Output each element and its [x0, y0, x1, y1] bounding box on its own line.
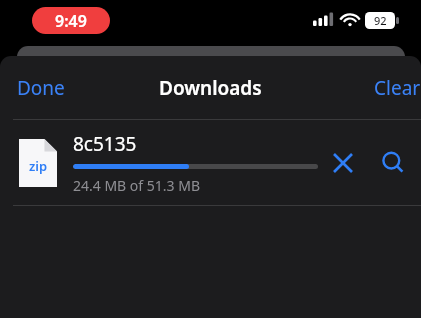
- staticText: Clear: [374, 75, 421, 101]
- staticText: Done: [17, 75, 65, 101]
- button[interactable]: Cancel download: [321, 141, 365, 185]
- staticText: zip: [29, 157, 48, 175]
- button[interactable]: Search: [371, 141, 415, 185]
- staticText: Downloads: [159, 75, 262, 101]
- button[interactable]: Clear: [365, 67, 421, 109]
- staticText: 9:49: [55, 10, 87, 32]
- button[interactable]: zip: [0, 120, 421, 205]
- staticText: 8c5135: [73, 131, 137, 157]
- button[interactable]: Done: [8, 67, 74, 109]
- staticText: 24.4 MB of 51.3 MB: [73, 176, 200, 195]
- staticText: 92: [374, 13, 387, 28]
